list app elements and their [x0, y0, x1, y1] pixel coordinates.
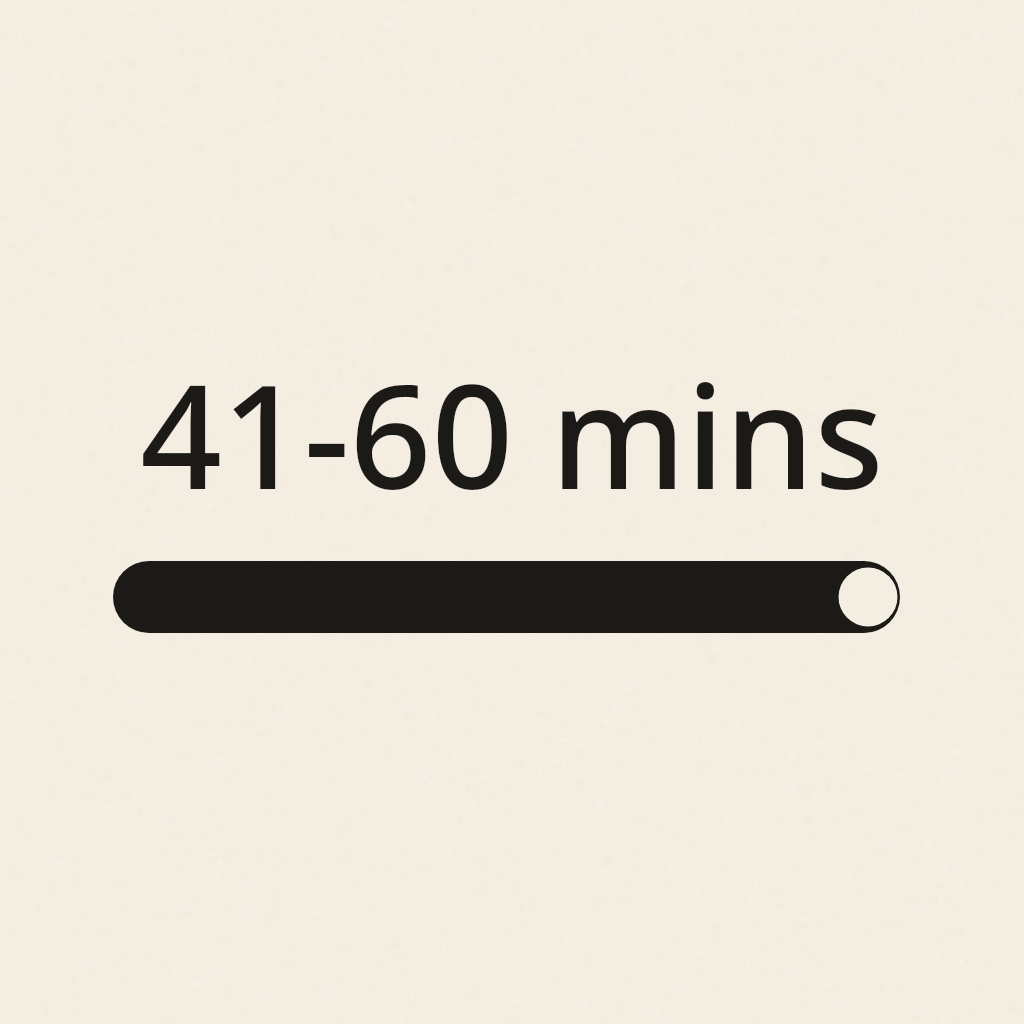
button[interactable]: Duration slider 41 to 60 minutes	[0, 0, 1024, 1024]
staticText: 41-60 mins	[0, 336, 1024, 531]
